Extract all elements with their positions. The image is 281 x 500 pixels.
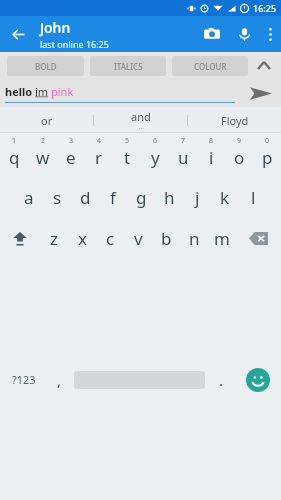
button[interactable]: More options	[259, 16, 281, 52]
staticText: s	[53, 186, 62, 209]
staticText: 5	[125, 136, 130, 146]
button[interactable]: 5	[113, 133, 141, 177]
staticText: 6	[153, 136, 158, 146]
button[interactable]: 0	[253, 133, 281, 177]
button[interactable]: v	[124, 217, 152, 259]
button[interactable]: 7	[169, 133, 197, 177]
staticText: ITALICS	[114, 61, 143, 72]
staticText: Floyd	[221, 113, 249, 128]
staticText: ?123	[12, 372, 36, 387]
button[interactable]: b	[152, 217, 180, 259]
staticText: j	[195, 186, 200, 209]
button[interactable]: and	[94, 107, 187, 133]
button[interactable]: Emoji	[235, 259, 281, 500]
staticText: a	[24, 186, 34, 209]
button[interactable]: h	[155, 177, 183, 217]
staticText: i	[209, 146, 214, 169]
staticText: 1	[12, 136, 17, 146]
button[interactable]: d	[71, 177, 99, 217]
staticText: e	[66, 146, 76, 169]
staticText: q	[9, 146, 20, 169]
staticText: or	[41, 113, 53, 128]
button[interactable]: 8	[197, 133, 225, 177]
button[interactable]: Collapse formatting	[251, 52, 277, 79]
button[interactable]: Send	[241, 79, 281, 107]
staticText: o	[234, 146, 245, 169]
button[interactable]: Shift	[0, 217, 40, 259]
button[interactable]: Comma	[47, 259, 71, 500]
staticText: l	[251, 186, 256, 209]
button[interactable]: f	[99, 177, 127, 217]
staticText: 7	[181, 136, 186, 146]
button[interactable]: ?123	[0, 259, 47, 500]
staticText: m	[214, 227, 230, 250]
staticText: 4	[97, 136, 102, 146]
staticText: t	[124, 146, 131, 169]
staticText: d	[80, 186, 91, 209]
staticText: h	[164, 186, 175, 209]
staticText: BOLD	[35, 61, 57, 72]
button[interactable]: hello im pink	[5, 84, 235, 102]
button[interactable]: g	[127, 177, 155, 217]
button[interactable]: 9	[225, 133, 253, 177]
staticText: v	[134, 227, 143, 250]
button[interactable]: a	[15, 177, 43, 217]
button[interactable]: m	[208, 217, 236, 259]
button[interactable]: COLOUR	[172, 56, 248, 76]
button[interactable]: BOLD	[7, 56, 84, 76]
button[interactable]: 3	[57, 133, 85, 177]
staticText: x	[78, 227, 87, 250]
staticText: r	[95, 146, 103, 169]
staticText: and	[131, 109, 151, 124]
staticText: .	[219, 370, 224, 390]
button[interactable]: n	[180, 217, 208, 259]
staticText: p	[262, 146, 273, 169]
button[interactable]: 4	[85, 133, 113, 177]
staticText: n	[189, 227, 200, 250]
button[interactable]: Camera	[195, 17, 229, 51]
staticText: b	[161, 227, 172, 250]
staticText: z	[50, 227, 58, 250]
staticText: 8	[209, 136, 214, 146]
button[interactable]: Floyd	[188, 107, 281, 133]
staticText: ···	[139, 124, 144, 132]
staticText: k	[220, 186, 230, 209]
button[interactable]: s	[43, 177, 71, 217]
button[interactable]: l	[239, 177, 267, 217]
button[interactable]: 6	[141, 133, 169, 177]
button[interactable]: Delete	[236, 217, 281, 259]
staticText: last online 16:25	[40, 38, 109, 50]
button[interactable]: 1	[0, 133, 29, 177]
staticText: COLOUR	[194, 61, 227, 72]
button[interactable]: Back	[0, 16, 36, 52]
staticText: g	[136, 186, 147, 209]
staticText: 9	[237, 136, 242, 146]
staticText: w	[36, 146, 50, 169]
staticText: hello im pink	[5, 84, 74, 99]
staticText: 16:25	[253, 2, 277, 14]
staticText: 0	[265, 136, 270, 146]
staticText: John	[40, 18, 71, 37]
button[interactable]: j	[183, 177, 211, 217]
staticText: 3	[69, 136, 74, 146]
button[interactable]: c	[96, 217, 124, 259]
button[interactable]: k	[211, 177, 239, 217]
staticText: 2	[41, 136, 46, 146]
staticText: y	[151, 146, 160, 169]
staticText: c	[106, 227, 115, 250]
button[interactable]: 2	[29, 133, 57, 177]
button[interactable]: z	[40, 217, 68, 259]
staticText: f	[110, 186, 116, 209]
button[interactable]: x	[68, 217, 96, 259]
staticText: u	[178, 146, 189, 169]
button[interactable]: Voice message	[229, 19, 259, 49]
staticText: ,	[57, 370, 62, 390]
button[interactable]: ITALICS	[90, 56, 166, 76]
button[interactable]: or	[0, 107, 93, 133]
